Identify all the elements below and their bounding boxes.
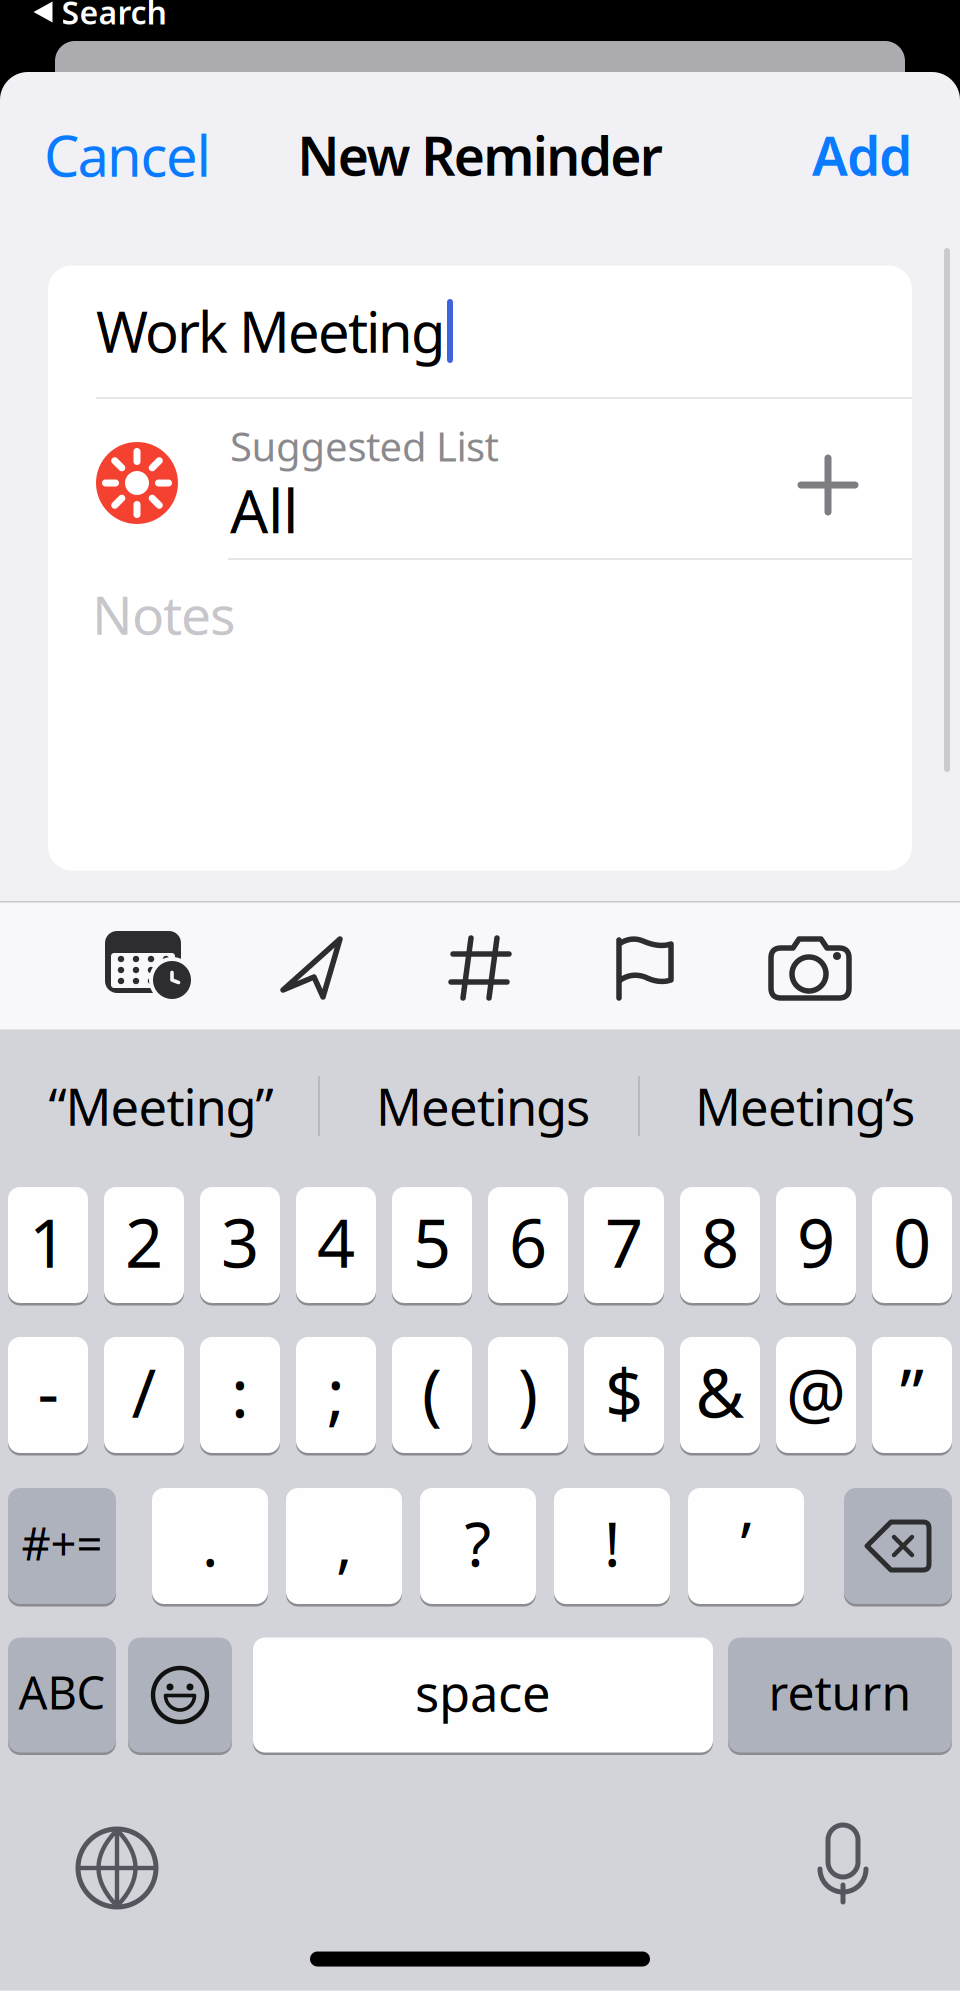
- button[interactable]: $: [584, 1335, 664, 1455]
- staticText: :: [231, 1348, 249, 1436]
- button[interactable]: 1: [8, 1185, 88, 1305]
- button[interactable]: #+=: [8, 1486, 116, 1606]
- button[interactable]: 5: [392, 1185, 472, 1305]
- button[interactable]: Meetings: [338, 1036, 628, 1176]
- button[interactable]: !: [554, 1486, 670, 1606]
- button[interactable]: [128, 1635, 232, 1754]
- button[interactable]: return: [728, 1635, 952, 1754]
- staticText: 7: [605, 1198, 643, 1286]
- button[interactable]: Suggested List: [48, 374, 912, 594]
- button[interactable]: Cancel: [44, 125, 264, 185]
- staticText: ’: [740, 1502, 751, 1584]
- button[interactable]: [78, 1829, 156, 1907]
- staticText: Notes: [92, 579, 236, 649]
- staticText: &: [695, 1348, 744, 1436]
- button[interactable]: &: [680, 1335, 760, 1455]
- staticText: (: [422, 1348, 442, 1436]
- button[interactable]: .: [152, 1486, 268, 1606]
- staticText: 9: [797, 1198, 835, 1286]
- button[interactable]: ;: [296, 1335, 376, 1455]
- button[interactable]: 2: [104, 1185, 184, 1305]
- button[interactable]: 8: [680, 1185, 760, 1305]
- staticText: ABC: [18, 1662, 105, 1722]
- staticText: ”: [900, 1348, 924, 1436]
- staticText: Add: [812, 120, 912, 190]
- staticText: !: [604, 1502, 620, 1584]
- button[interactable]: 3: [200, 1185, 280, 1305]
- button[interactable]: Add: [712, 125, 912, 185]
- button[interactable]: [616, 936, 674, 1000]
- button[interactable]: 7: [584, 1185, 664, 1305]
- button[interactable]: ): [488, 1335, 568, 1455]
- staticText: “Meeting”: [48, 1072, 273, 1140]
- button[interactable]: Meeting’s: [660, 1036, 950, 1176]
- button[interactable]: Search: [33, 0, 166, 33]
- button[interactable]: space: [253, 1635, 713, 1754]
- button[interactable]: [283, 936, 343, 1000]
- staticText: 6: [509, 1198, 547, 1286]
- staticText: Cancel: [44, 118, 210, 192]
- button[interactable]: Work Meeting: [96, 286, 796, 376]
- staticText: space: [415, 1658, 551, 1726]
- staticText: 0: [893, 1198, 931, 1286]
- button[interactable]: ’: [688, 1486, 804, 1606]
- staticText: All: [230, 470, 298, 550]
- staticText: 2: [125, 1198, 163, 1286]
- button[interactable]: “Meeting”: [16, 1036, 306, 1176]
- button[interactable]: [105, 931, 195, 1003]
- button[interactable]: 0: [872, 1185, 952, 1305]
- staticText: Suggested List: [230, 419, 498, 472]
- staticText: 1: [29, 1198, 67, 1286]
- staticText: ): [518, 1348, 538, 1436]
- button[interactable]: ,: [286, 1486, 402, 1606]
- button[interactable]: /: [104, 1335, 184, 1455]
- staticText: $: [605, 1348, 643, 1436]
- staticText: New Reminder: [297, 120, 663, 190]
- staticText: 4: [317, 1198, 355, 1286]
- staticText: return: [768, 1660, 911, 1724]
- staticText: .: [202, 1502, 218, 1584]
- staticText: Search: [61, 0, 166, 33]
- button[interactable]: [844, 1486, 952, 1606]
- button[interactable]: [771, 936, 849, 1000]
- button[interactable]: [818, 1824, 868, 1904]
- button[interactable]: 4: [296, 1185, 376, 1305]
- staticText: ,: [336, 1502, 352, 1584]
- button[interactable]: :: [200, 1335, 280, 1455]
- staticText: #+=: [21, 1513, 102, 1573]
- button[interactable]: 9: [776, 1185, 856, 1305]
- button[interactable]: ”: [872, 1335, 952, 1455]
- staticText: Work Meeting: [96, 294, 445, 368]
- staticText: -: [37, 1348, 58, 1436]
- staticText: Meetings: [376, 1072, 590, 1140]
- button[interactable]: -: [8, 1335, 88, 1455]
- button[interactable]: @: [776, 1335, 856, 1455]
- button[interactable]: Notes: [92, 579, 792, 649]
- button[interactable]: ?: [420, 1486, 536, 1606]
- button[interactable]: [451, 938, 509, 998]
- staticText: ;: [327, 1348, 345, 1436]
- button[interactable]: ABC: [8, 1635, 116, 1754]
- button[interactable]: 6: [488, 1185, 568, 1305]
- staticText: 8: [701, 1198, 739, 1286]
- button[interactable]: (: [392, 1335, 472, 1455]
- staticText: Meeting’s: [695, 1072, 915, 1140]
- staticText: ?: [464, 1502, 491, 1584]
- staticText: /: [131, 1348, 156, 1436]
- staticText: 5: [413, 1198, 451, 1286]
- staticText: 3: [221, 1198, 259, 1286]
- staticText: @: [786, 1348, 846, 1436]
